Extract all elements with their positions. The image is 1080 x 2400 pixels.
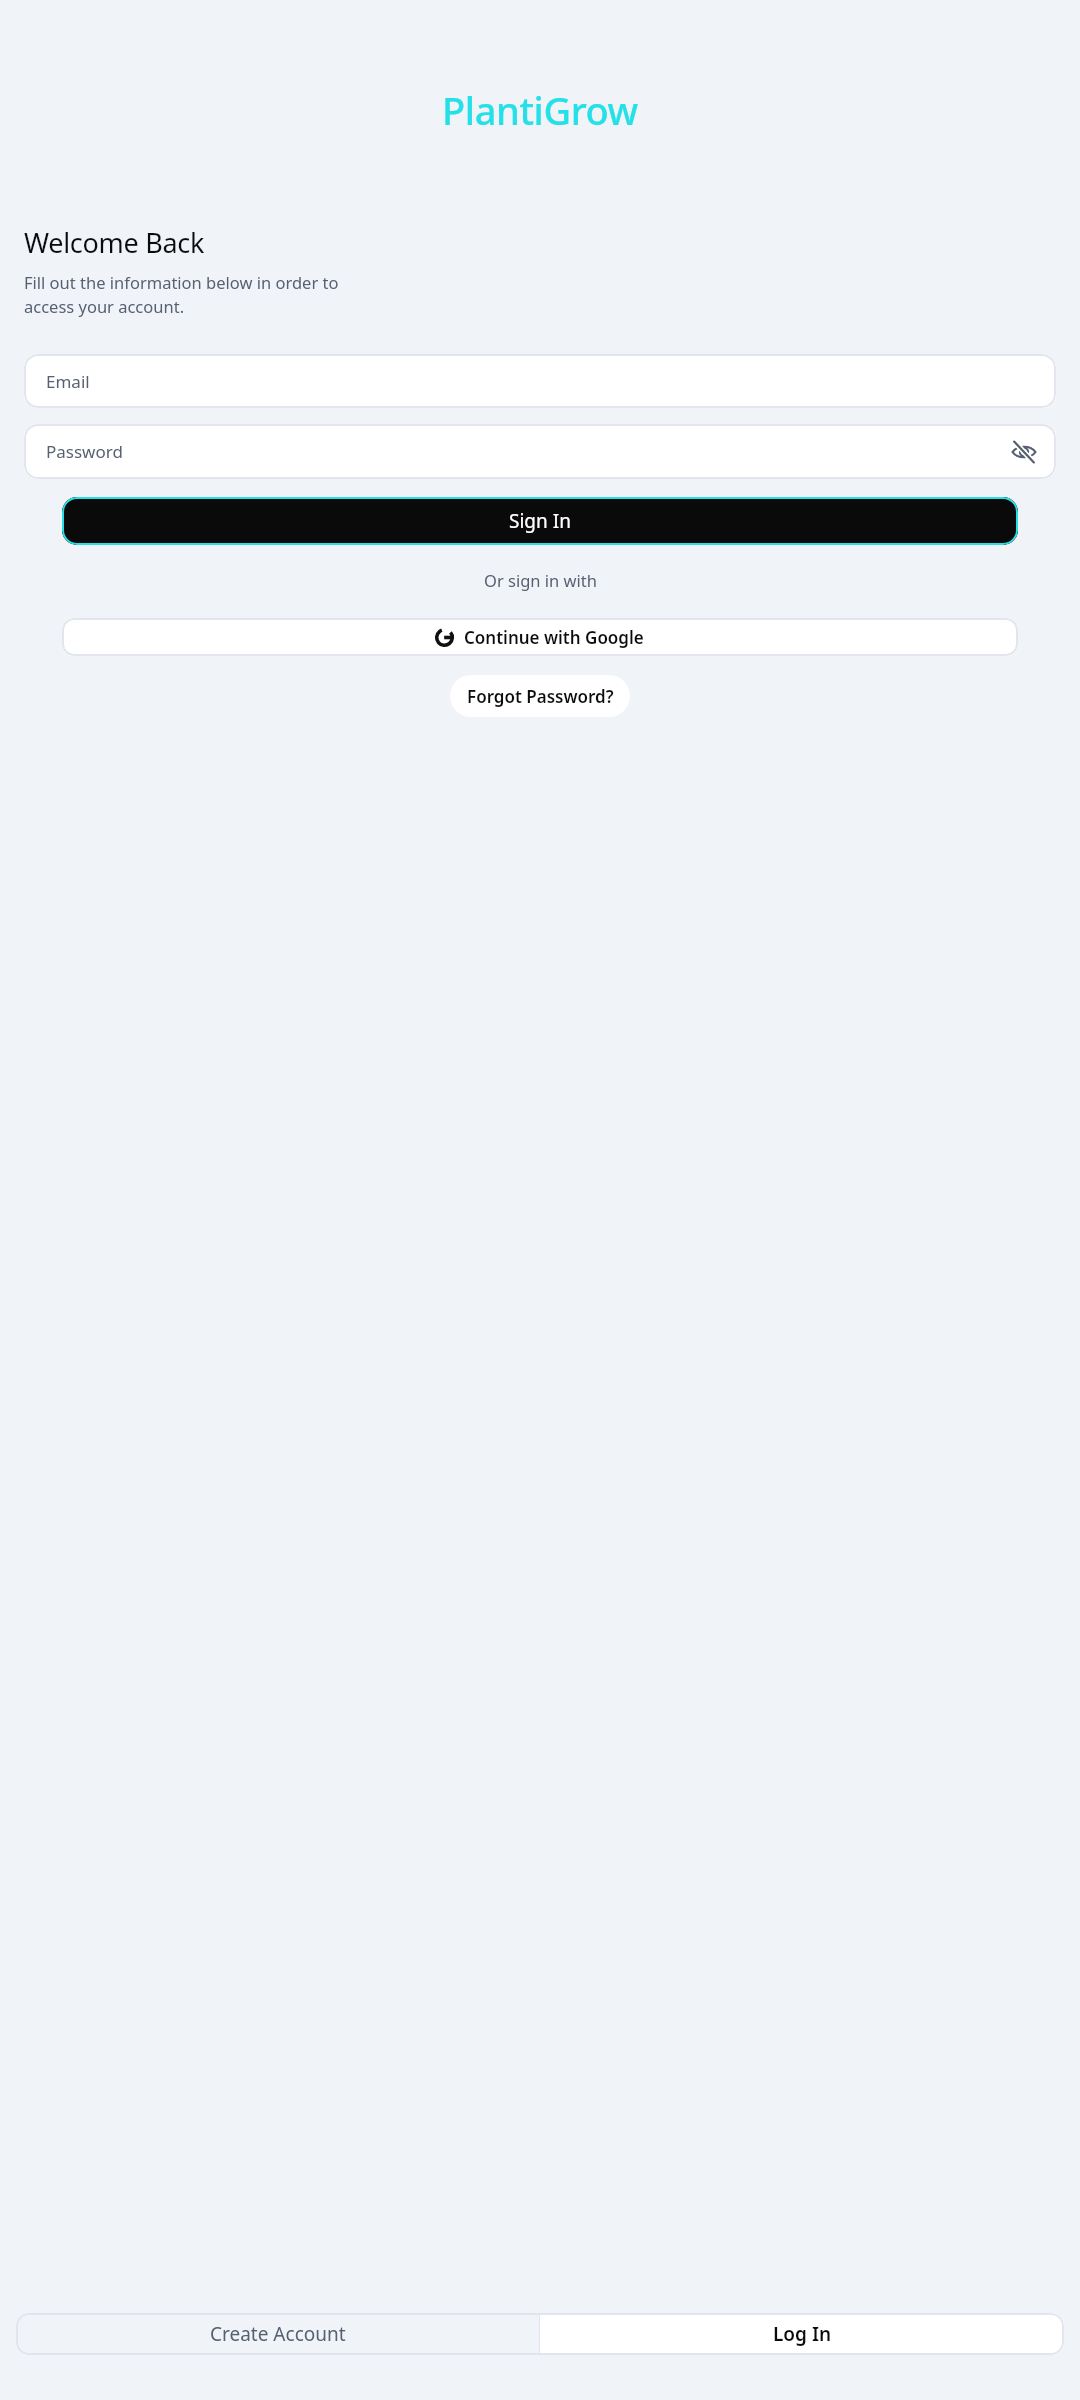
button[interactable]: Create Account (16, 2313, 539, 2355)
button[interactable]: Forgot Password? (450, 675, 630, 717)
button[interactable]: Toggle password visibility (1004, 432, 1044, 472)
staticText: Log In (773, 2321, 832, 2347)
staticText: Or sign in with (484, 569, 597, 591)
staticText: PlantiGrow (442, 84, 638, 136)
button[interactable]: Email (24, 354, 1056, 408)
staticText: Continue with Google (464, 626, 644, 649)
button[interactable]: Log In (540, 2313, 1064, 2355)
staticText: Fill out the information below in order … (24, 271, 339, 318)
staticText: Create Account (210, 2321, 346, 2347)
staticText: Sign In (509, 508, 571, 534)
staticText: Email (46, 370, 90, 393)
staticText: Forgot Password? (467, 685, 614, 708)
button[interactable]: Sign In (62, 497, 1018, 545)
button[interactable]: Continue with Google (62, 618, 1018, 656)
button[interactable]: Password (24, 424, 1056, 479)
staticText: Welcome Back (24, 224, 205, 261)
staticText: Password (46, 440, 123, 463)
